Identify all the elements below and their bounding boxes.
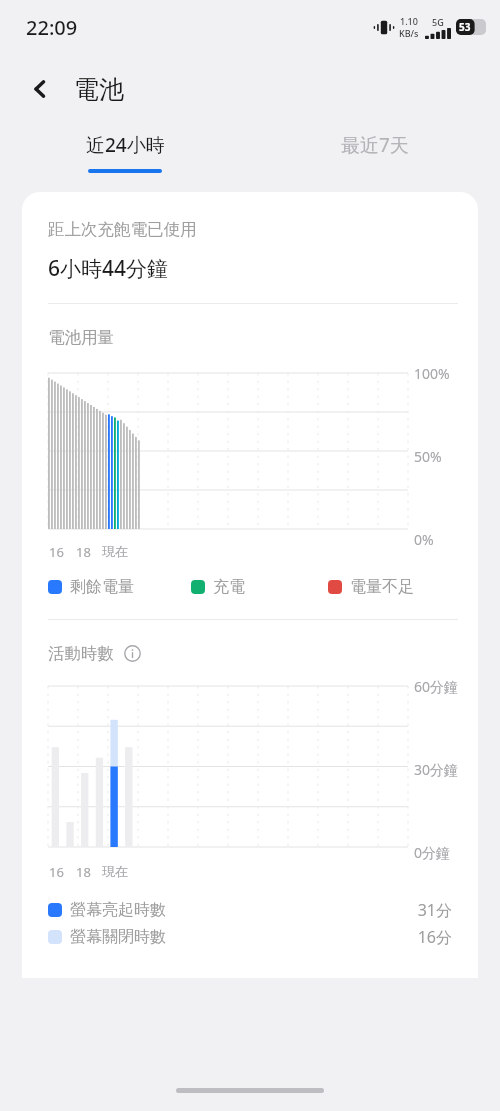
staticText: 現在: [102, 543, 128, 559]
staticText: 1.10: [400, 15, 418, 27]
staticText: 充電: [213, 577, 245, 597]
staticText: 31分: [417, 899, 452, 921]
staticText: 最近7天: [341, 132, 409, 158]
staticText: 16分: [417, 926, 452, 948]
staticText: 距上次充飽電已使用: [48, 219, 197, 240]
staticText: KB/s: [399, 27, 419, 39]
staticText: 50%: [414, 447, 442, 466]
button[interactable]: 螢幕關閉時數: [48, 926, 452, 948]
button[interactable]: 近24小時: [0, 120, 250, 180]
staticText: 螢幕關閉時數: [70, 927, 166, 947]
button[interactable]: Info: [121, 642, 143, 664]
staticText: 剩餘電量: [70, 577, 134, 597]
staticText: 電量不足: [350, 577, 414, 597]
staticText: 16: [49, 863, 64, 881]
staticText: 0%: [414, 530, 434, 549]
staticText: 22:09: [26, 14, 78, 41]
button[interactable]: 螢幕亮起時數: [48, 899, 452, 921]
button[interactable]: 最近7天: [250, 120, 500, 180]
staticText: 30分鐘: [414, 760, 459, 779]
staticText: 電池用量: [48, 327, 114, 348]
staticText: 螢幕亮起時數: [70, 900, 166, 920]
staticText: 活動時數: [48, 643, 114, 664]
staticText: 18: [76, 543, 91, 561]
staticText: 18: [76, 863, 91, 881]
staticText: 100%: [414, 364, 450, 383]
staticText: 電池: [74, 74, 124, 105]
button[interactable]: Back: [18, 67, 62, 111]
staticText: 近24小時: [86, 132, 165, 158]
staticText: 16: [49, 543, 64, 561]
staticText: 6小時44分鐘: [48, 254, 169, 283]
staticText: 0分鐘: [414, 843, 451, 862]
staticText: 60分鐘: [414, 677, 459, 696]
staticText: 53: [459, 20, 471, 34]
staticText: 現在: [102, 863, 128, 879]
staticText: 5G: [432, 16, 444, 28]
